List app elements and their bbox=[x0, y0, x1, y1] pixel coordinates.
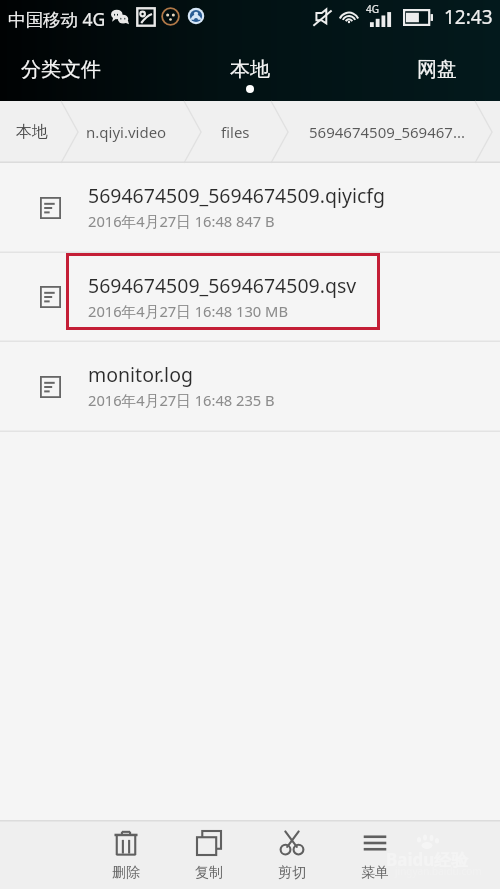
button[interactable]: 分类文件 bbox=[0, 36, 122, 101]
staticText: 5694674509_569467... bbox=[309, 122, 466, 142]
staticText: 5694674509_5694674509.qiyicfg bbox=[88, 182, 386, 209]
staticText: 删除 bbox=[112, 864, 140, 882]
button[interactable]: files bbox=[221, 101, 500, 163]
staticText: 12:43 bbox=[444, 4, 493, 30]
staticText: 分类文件 bbox=[0, 57, 122, 82]
staticText: 菜单 bbox=[361, 864, 389, 882]
staticText: monitor.log bbox=[88, 361, 193, 388]
staticText: 4G bbox=[366, 2, 379, 16]
staticText: 本地 bbox=[167, 57, 333, 82]
staticText: 网盘 bbox=[374, 57, 500, 82]
staticText: n.qiyi.video bbox=[86, 122, 167, 142]
button[interactable]: 本地 bbox=[167, 36, 333, 101]
staticText: 复制 bbox=[195, 864, 223, 882]
button[interactable]: monitor.log bbox=[0, 342, 500, 432]
staticText: 5694674509_5694674509.qsv bbox=[88, 272, 357, 299]
staticText: 2016年4月27日 16:48 130 MB bbox=[88, 301, 288, 321]
button[interactable]: 5694674509_5694674509.qsv bbox=[0, 253, 500, 342]
button[interactable]: 网盘 bbox=[374, 36, 500, 101]
button[interactable]: 复制 bbox=[167, 820, 250, 889]
button[interactable]: n.qiyi.video bbox=[86, 101, 500, 163]
button[interactable]: 剪切 bbox=[250, 820, 333, 889]
staticText: files bbox=[221, 122, 250, 142]
staticText: 剪切 bbox=[278, 864, 306, 882]
staticText: 2016年4月27日 16:48 235 B bbox=[88, 390, 275, 410]
button[interactable]: 5694674509_569467... bbox=[309, 101, 500, 163]
button[interactable]: 本地 bbox=[16, 101, 500, 163]
staticText: 2016年4月27日 16:48 847 B bbox=[88, 211, 275, 231]
staticText: 本地 bbox=[16, 122, 48, 142]
button[interactable]: 菜单 bbox=[333, 820, 416, 889]
staticText: 中国移动 4G bbox=[8, 7, 106, 31]
button[interactable]: 删除 bbox=[84, 820, 167, 889]
button[interactable]: 5694674509_5694674509.qiyicfg bbox=[0, 163, 500, 253]
